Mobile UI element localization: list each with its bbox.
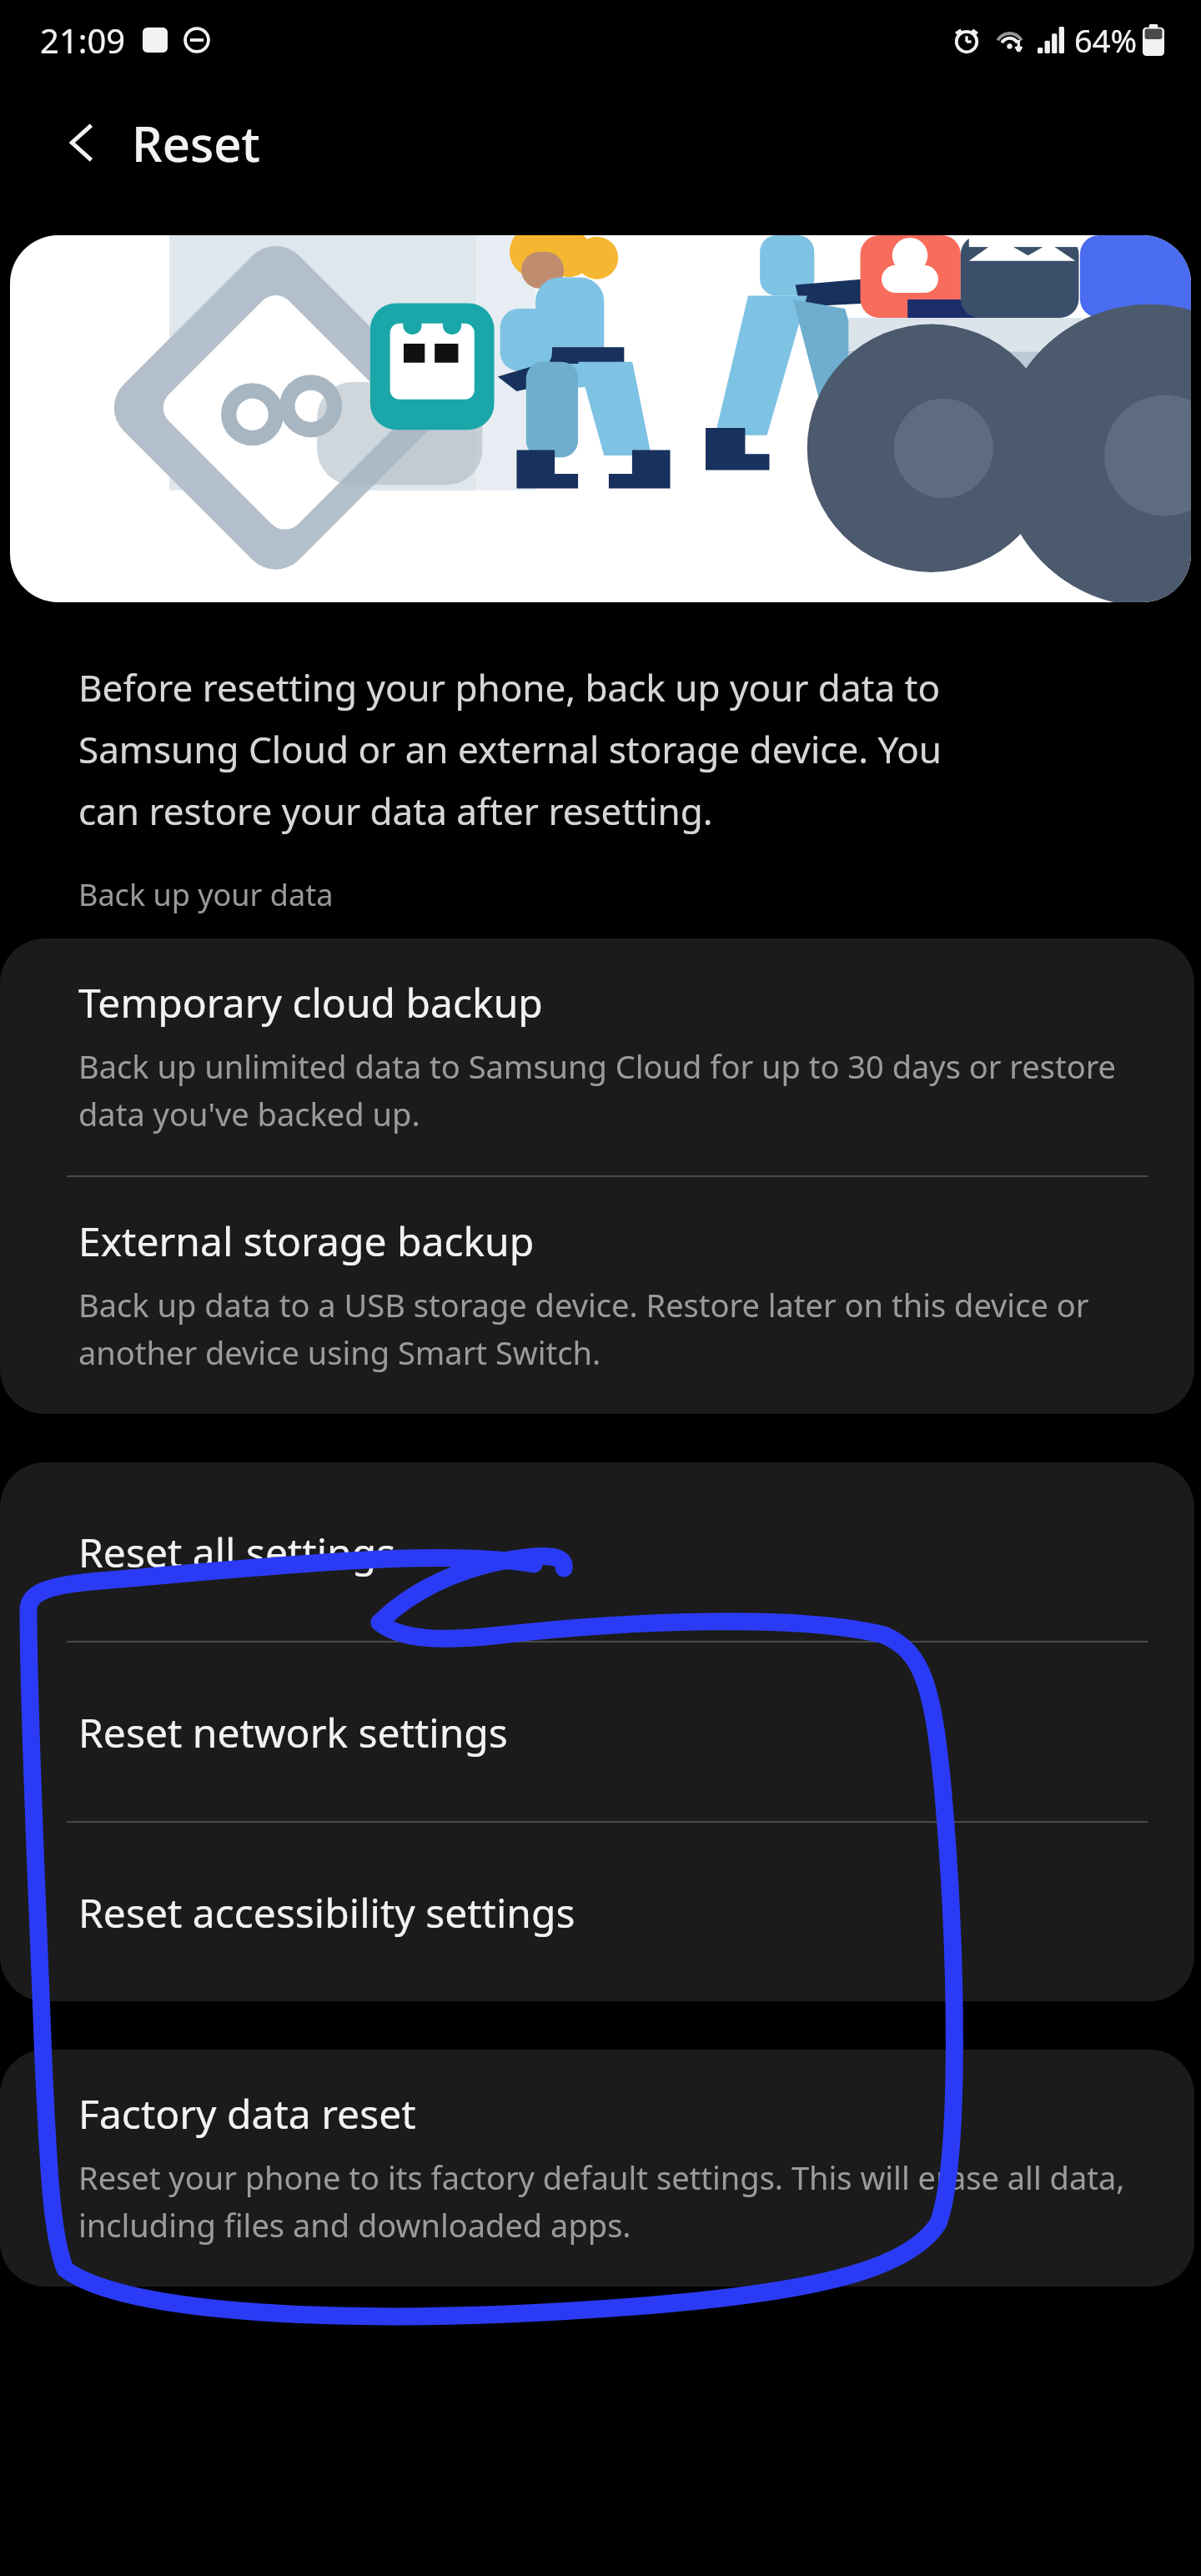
staticText: Reset accessibility settings <box>78 1885 575 1940</box>
staticText: 21:09 <box>40 18 126 63</box>
button[interactable]: Factory data reset <box>0 2050 1194 2287</box>
staticText: Back up data to a USB storage device. Re… <box>78 1283 1136 1374</box>
staticText: Reset your phone to its factory default … <box>78 2156 1136 2246</box>
staticText: Reset all settings <box>78 1525 396 1579</box>
button[interactable]: Reset accessibility settings <box>0 1823 1194 2001</box>
button[interactable]: Reset network settings <box>0 1643 1194 1821</box>
button[interactable]: External storage backup <box>0 1177 1194 1414</box>
staticText: Samsung Cloud or an external storage dev… <box>78 724 942 774</box>
staticText: Temporary cloud backup <box>78 975 543 1029</box>
staticText: External storage backup <box>78 1214 535 1268</box>
staticText: Back up your data <box>78 874 334 915</box>
staticText: can restore your data after resetting. <box>78 786 713 836</box>
staticText: Before resetting your phone, back up you… <box>78 662 941 712</box>
button[interactable]: Reset all settings <box>0 1462 1194 1641</box>
staticText: 64% <box>1074 18 1138 62</box>
staticText: Factory data reset <box>78 2086 416 2141</box>
staticText: Reset network settings <box>78 1705 508 1759</box>
button[interactable]: Back <box>45 105 120 180</box>
button[interactable]: Temporary cloud backup <box>0 938 1194 1175</box>
staticText: Back up unlimited data to Samsung Cloud … <box>78 1044 1136 1135</box>
staticText: Reset <box>132 110 260 176</box>
